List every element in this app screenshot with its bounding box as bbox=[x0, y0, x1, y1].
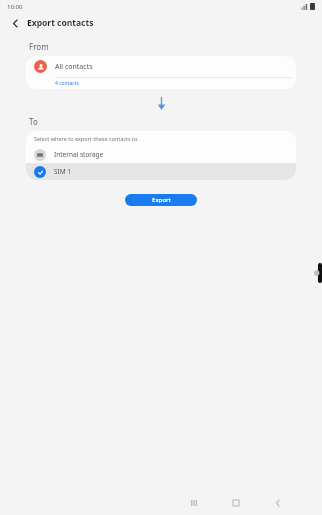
staticText: From bbox=[29, 41, 49, 52]
staticText: All contacts bbox=[55, 62, 93, 72]
button[interactable]: Edge panel bbox=[313, 260, 322, 286]
button[interactable]: Home bbox=[223, 491, 249, 515]
staticText: Export bbox=[152, 196, 171, 204]
staticText: 4 contacts bbox=[55, 80, 79, 87]
staticText: Export contacts bbox=[27, 17, 94, 29]
button[interactable]: All contacts bbox=[26, 56, 296, 89]
button[interactable]: SIM 1 bbox=[26, 163, 296, 180]
button[interactable]: Export bbox=[125, 194, 197, 206]
staticText: SIM 1 bbox=[54, 167, 72, 176]
staticText: Internal storage bbox=[54, 150, 104, 159]
staticText: To bbox=[29, 116, 38, 127]
button[interactable]: Recents bbox=[181, 491, 207, 515]
button[interactable]: Back bbox=[265, 491, 291, 515]
staticText: 10:00 bbox=[7, 3, 23, 11]
button[interactable]: Back bbox=[7, 15, 23, 31]
button[interactable]: Internal storage bbox=[26, 146, 296, 163]
staticText: Select where to export these contacts to… bbox=[34, 135, 139, 142]
